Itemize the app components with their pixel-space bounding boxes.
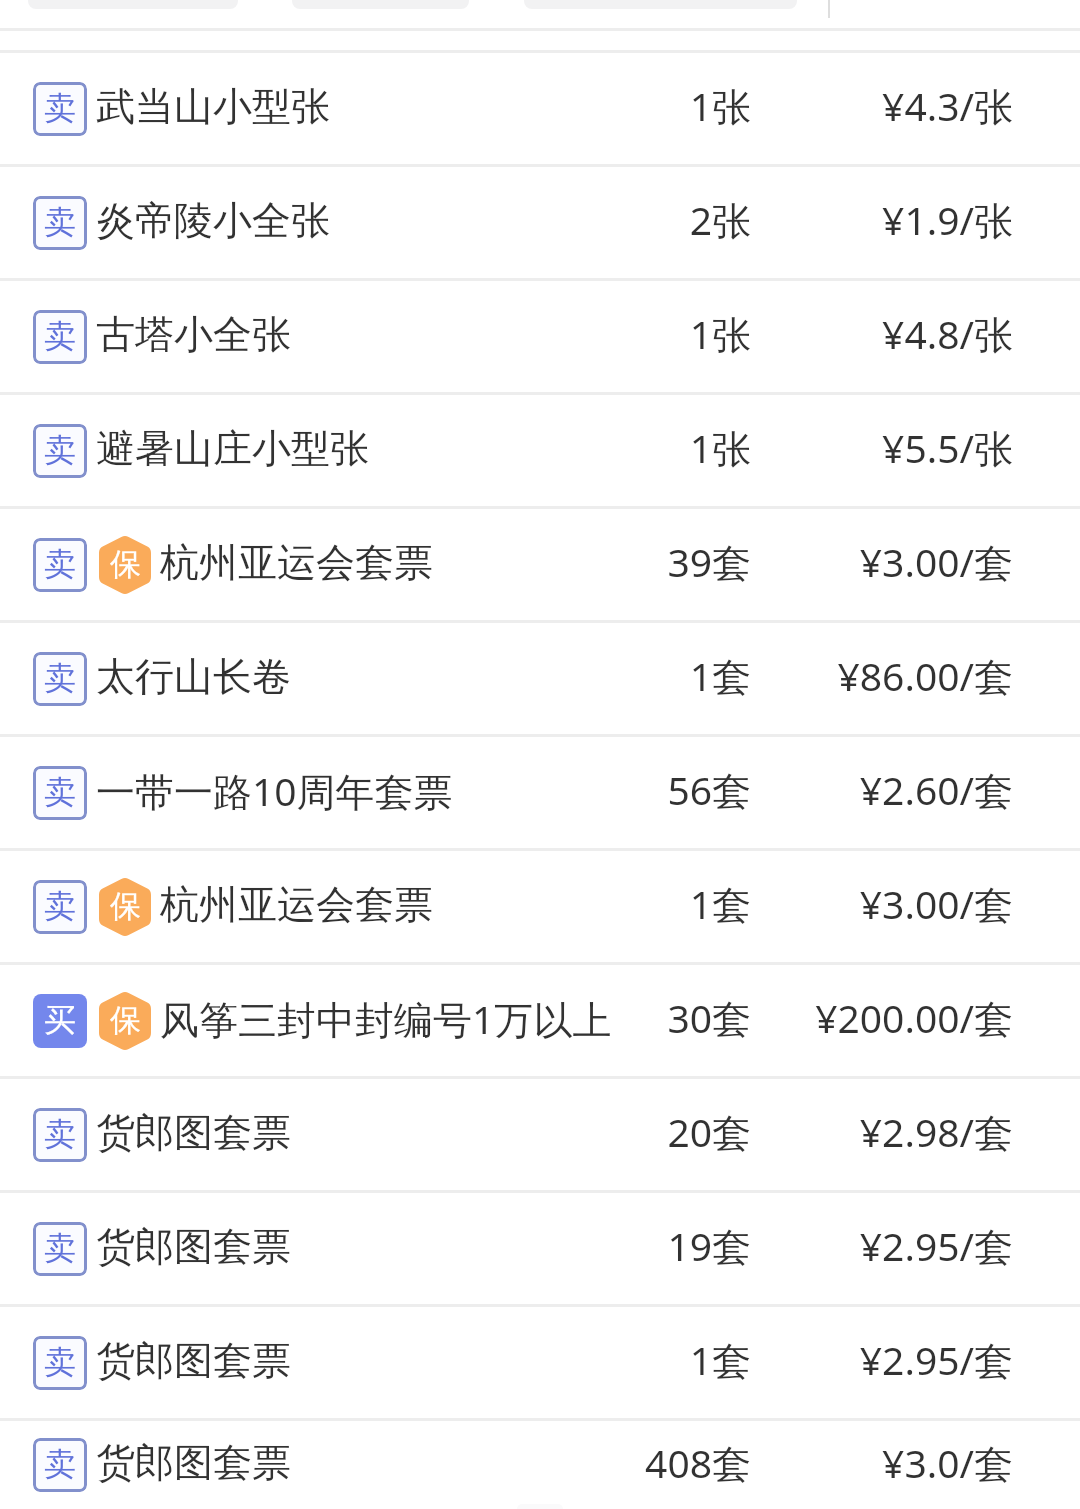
staticText: 卖 [44, 88, 76, 128]
staticText: 卖 [44, 430, 76, 470]
staticText: ¥1.9/张 [882, 193, 1013, 246]
staticText: 货郎图套票 [96, 1108, 291, 1157]
staticText: 1套 [689, 877, 751, 930]
staticText: 56套 [667, 763, 751, 816]
staticText: 古塔小全张 [96, 310, 291, 359]
staticText: ¥200.00/套 [815, 991, 1013, 1044]
button[interactable]: 买 [0, 965, 1080, 1076]
other: 保障交易 [99, 991, 151, 1051]
staticText: ¥4.3/张 [882, 79, 1013, 132]
staticText: 保 [110, 887, 141, 926]
staticText: 卖 [44, 1228, 76, 1268]
staticText: 卖 [44, 544, 76, 584]
staticText: 1张 [689, 307, 751, 360]
staticText: 1张 [689, 79, 751, 132]
staticText: 卖 [44, 202, 76, 242]
staticText: 卖 [44, 1114, 76, 1154]
staticText: 408套 [645, 1436, 751, 1489]
staticText: 买 [44, 1000, 76, 1040]
staticText: ¥2.95/套 [859, 1219, 1013, 1272]
staticText: ¥3.00/套 [859, 877, 1013, 930]
staticText: ¥4.8/张 [882, 307, 1013, 360]
staticText: 19套 [667, 1219, 751, 1272]
button[interactable]: 卖 [0, 851, 1080, 962]
staticText: 1套 [689, 1333, 751, 1386]
staticText: 39套 [667, 535, 751, 588]
button[interactable]: 卖 [0, 1307, 1080, 1418]
staticText: 卖 [44, 886, 76, 926]
staticText: 杭州亚运会套票 [160, 880, 433, 929]
staticText: 避暑山庄小型张 [96, 424, 369, 473]
staticText: 2张 [689, 193, 751, 246]
staticText: 保 [110, 1001, 141, 1040]
button[interactable]: 卖 [0, 395, 1080, 506]
button[interactable]: 卖 [0, 1193, 1080, 1304]
staticText: 30套 [667, 991, 751, 1044]
staticText: 卖 [44, 316, 76, 356]
button[interactable]: 卖 [0, 167, 1080, 278]
staticText: ¥86.00/套 [837, 649, 1013, 702]
button[interactable]: 卖 [0, 737, 1080, 848]
other: 保障交易 [99, 535, 151, 595]
button[interactable]: 卖 [0, 281, 1080, 392]
staticText: 一带一路10周年套票 [96, 764, 453, 817]
staticText: 杭州亚运会套票 [160, 538, 433, 587]
staticText: 货郎图套票 [96, 1222, 291, 1271]
staticText: ¥2.95/套 [859, 1333, 1013, 1386]
staticText: 20套 [667, 1105, 751, 1158]
staticText: 卖 [44, 772, 76, 812]
staticText: 货郎图套票 [96, 1336, 291, 1385]
staticText: 卖 [44, 1342, 76, 1382]
staticText: 卖 [44, 658, 76, 698]
staticText: 风筝三封中封编号1万以上 [160, 992, 612, 1045]
staticText: ¥2.60/套 [859, 763, 1013, 816]
staticText: 太行山长卷 [96, 652, 291, 701]
staticText: 货郎图套票 [96, 1438, 291, 1487]
button[interactable]: 卖 [0, 623, 1080, 734]
staticText: 1套 [689, 649, 751, 702]
staticText: 1张 [689, 421, 751, 474]
other: 保障交易 [99, 877, 151, 937]
staticText: 武当山小型张 [96, 82, 330, 131]
staticText: ¥3.00/套 [859, 535, 1013, 588]
staticText: 炎帝陵小全张 [96, 196, 330, 245]
button[interactable]: 卖 [0, 509, 1080, 620]
button[interactable]: 卖 [0, 53, 1080, 164]
staticText: 保 [110, 545, 141, 584]
staticText: ¥5.5/张 [882, 421, 1013, 474]
staticText: ¥2.98/套 [859, 1105, 1013, 1158]
staticText: ¥3.0/套 [882, 1436, 1013, 1489]
button[interactable]: 卖 [0, 1421, 1080, 1509]
staticText: 卖 [44, 1444, 76, 1484]
button[interactable]: 卖 [0, 1079, 1080, 1190]
